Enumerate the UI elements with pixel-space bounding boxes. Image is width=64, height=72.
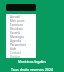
button[interactable]: Favoris: [6, 31, 36, 35]
button[interactable]: Mes cours: [6, 19, 36, 23]
button[interactable]: Agenda: [6, 39, 36, 43]
button[interactable]: Accueil: [6, 15, 36, 19]
button[interactable]: Messages: [6, 35, 36, 39]
staticText: Accueil: [10, 15, 20, 19]
button[interactable]: Banner: [6, 4, 36, 11]
staticText: Mes cours: [10, 19, 25, 23]
staticText: Contact: [10, 51, 21, 55]
button[interactable]: Exercices: [6, 23, 36, 27]
button[interactable]: Aide: [6, 47, 36, 51]
button[interactable]: Resultats: [6, 27, 36, 31]
staticText: Exercices: [10, 23, 23, 27]
staticText: Agenda: [10, 39, 21, 43]
staticText: Quitter: [10, 55, 21, 58]
button[interactable]: Contact: [6, 51, 36, 55]
staticText: Resultats: [10, 27, 23, 31]
button[interactable]: Parametres: [6, 43, 36, 47]
staticText: Tous droits reserves 2024: [11, 67, 53, 72]
button[interactable]: Quitter: [6, 55, 36, 58]
staticText: Favoris: [10, 31, 21, 35]
staticText: Mentions legales: [18, 59, 46, 64]
staticText: Parametres: [10, 43, 27, 47]
staticText: Messages: [10, 35, 24, 39]
staticText: Aide: [10, 47, 17, 51]
